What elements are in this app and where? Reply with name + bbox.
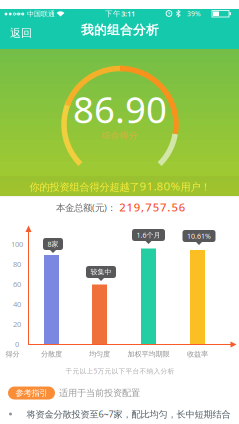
- staticText: 加权平均期限: [127, 349, 169, 359]
- staticText: 39%: [187, 9, 201, 18]
- staticText: 返回: [10, 26, 32, 40]
- staticText: 0: [15, 339, 19, 349]
- staticText: 8家: [47, 239, 58, 249]
- staticText: 综合得分: [102, 130, 138, 141]
- staticText: 你的投资组合得分超越了91.80%用户！: [29, 178, 210, 194]
- staticText: 下午3:11: [105, 8, 135, 19]
- staticText: 千元以上5万元以下平台不纳入分析: [65, 366, 174, 375]
- staticText: 参考指引: [15, 388, 47, 398]
- staticText: 本金总额(元)：: [56, 201, 116, 214]
- staticText: 40: [13, 299, 21, 309]
- staticText: 均匀度: [89, 349, 110, 359]
- staticText: 100: [11, 239, 23, 249]
- staticText: 80: [13, 259, 21, 269]
- staticText: 较集中: [90, 268, 111, 276]
- staticText: 将资金分散投资至6~7家，配比均匀，长中短期结合: [26, 408, 230, 420]
- staticText: 1.6个月: [136, 230, 160, 240]
- staticText: 收益率: [187, 349, 208, 359]
- staticText: 219,757.56: [119, 199, 185, 215]
- staticText: 适用于当前投资配置: [59, 387, 140, 399]
- staticText: 20: [13, 319, 21, 329]
- staticText: 分散度: [41, 349, 62, 359]
- staticText: 得分: [5, 349, 19, 359]
- staticText: 60: [13, 279, 21, 289]
- staticText: 10.61%: [187, 231, 211, 241]
- staticText: 我的组合分析: [81, 22, 159, 38]
- button[interactable]: 参考指引: [8, 386, 55, 399]
- staticText: 86.90: [73, 84, 167, 134]
- button[interactable]: 返回: [4, 22, 38, 44]
- staticText: 中国联通: [27, 10, 55, 18]
